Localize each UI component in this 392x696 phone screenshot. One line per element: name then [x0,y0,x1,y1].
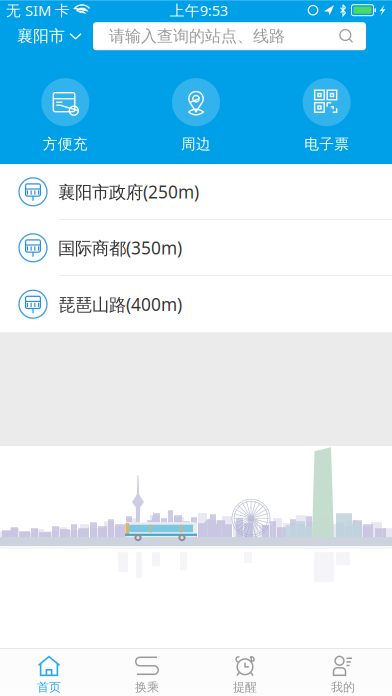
button[interactable]: 方便充 [0,78,131,153]
staticText: 提醒 [233,680,257,694]
button[interactable]: 周边 [131,78,261,153]
staticText: 上午9:53 [170,0,228,20]
button[interactable]: 首页 [0,649,98,696]
button[interactable]: 提醒 [196,649,294,696]
staticText: 琵琶山路(400m) [58,293,182,316]
staticText: 换乘 [135,680,159,694]
staticText: 国际商都(350m) [58,236,182,259]
staticText: 请输入查询的站点、线路 [109,26,285,46]
staticText: 方便充 [43,135,88,153]
staticText: 电子票 [304,135,349,153]
staticText: 我的 [331,680,355,694]
staticText: 无 SIM 卡 [6,0,70,20]
button[interactable]: 我的 [294,649,392,696]
button[interactable]: 请输入查询的站点、线路 [93,22,366,50]
button[interactable]: 电子票 [261,78,392,153]
staticText: 首页 [37,680,61,694]
button[interactable]: 襄阳市 [9,21,89,51]
staticText: 周边 [181,135,211,153]
button[interactable]: 换乘 [98,649,196,696]
button[interactable]: 襄阳市政府(250m) [0,164,392,220]
staticText: 襄阳市 [17,26,65,46]
staticText: 襄阳市政府(250m) [58,180,199,203]
button[interactable]: 琵琶山路(400m) [0,276,392,332]
button[interactable]: 国际商都(350m) [0,220,392,276]
